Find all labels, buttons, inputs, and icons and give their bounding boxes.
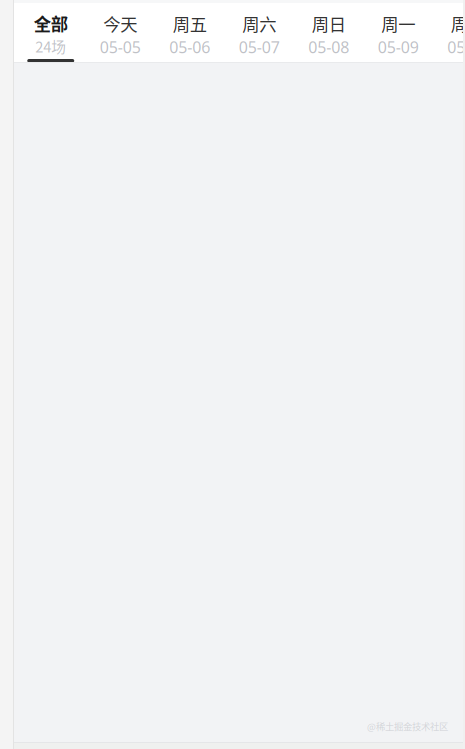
staticText: 05-08 <box>308 36 349 58</box>
staticText: 周一 <box>381 11 415 36</box>
staticText: 全部 <box>34 10 68 36</box>
staticText: 05-07 <box>239 36 280 58</box>
staticText: 24场 <box>35 36 66 57</box>
staticText: 周二 <box>451 11 465 36</box>
staticText: 周日 <box>312 11 346 36</box>
button[interactable]: 周五 <box>155 3 224 62</box>
staticText: 05-05 <box>100 36 141 58</box>
staticText: 05-09 <box>378 36 419 58</box>
staticText: 周六 <box>242 11 276 36</box>
button[interactable]: 周一 <box>363 3 433 62</box>
staticText: 05-06 <box>169 36 210 58</box>
button[interactable]: 周二 <box>433 3 465 62</box>
button[interactable]: 周六 <box>224 3 294 62</box>
button[interactable]: 今天 <box>85 3 155 62</box>
staticText: @稀土掘金技术社区 <box>367 719 448 733</box>
button[interactable]: 全部 <box>16 3 85 62</box>
staticText: 05-10 <box>447 36 465 58</box>
staticText: 周五 <box>173 11 207 36</box>
button[interactable]: 周日 <box>294 3 363 62</box>
staticText: 今天 <box>103 11 137 36</box>
